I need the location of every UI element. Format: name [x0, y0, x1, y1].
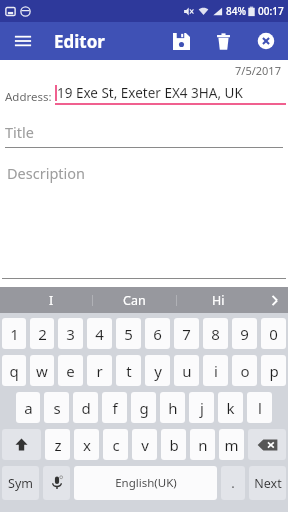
staticText: h — [168, 398, 178, 418]
button[interactable]: j — [189, 392, 214, 423]
staticText: 00:17 — [258, 4, 284, 18]
staticText: 1 — [10, 324, 19, 344]
button[interactable]: w — [30, 355, 54, 386]
staticText: t — [126, 361, 132, 381]
button[interactable]: 8 — [203, 318, 228, 349]
button[interactable]: Voice input — [43, 466, 70, 500]
button[interactable]: t — [116, 355, 141, 386]
button[interactable]: 9 — [232, 318, 257, 349]
staticText: m — [224, 435, 239, 455]
staticText: Title — [5, 122, 34, 142]
button[interactable]: c — [103, 429, 128, 460]
staticText: 7 — [182, 324, 191, 344]
button[interactable]: Backspace — [248, 429, 286, 460]
button[interactable]: z — [45, 429, 70, 460]
button[interactable]: i — [203, 355, 228, 386]
button[interactable]: 5 — [116, 318, 141, 349]
button[interactable]: n — [190, 429, 215, 460]
button[interactable]: s — [44, 392, 69, 423]
button[interactable]: Next — [249, 466, 286, 500]
staticText: c — [112, 435, 120, 455]
staticText: q — [9, 361, 19, 381]
staticText: Hi — [212, 292, 225, 309]
staticText: Editor — [54, 30, 105, 53]
button[interactable]: Delete — [202, 22, 244, 60]
staticText: y — [154, 361, 162, 381]
staticText: s — [53, 398, 61, 418]
button[interactable]: 2 — [30, 318, 54, 349]
button[interactable]: y — [145, 355, 170, 386]
staticText: Sym — [8, 475, 33, 492]
staticText: 19 Exe St, Exeter EX4 3HA, UK — [57, 84, 243, 102]
staticText: Next — [254, 475, 282, 492]
button[interactable]: 7 — [174, 318, 199, 349]
staticText: I — [49, 292, 54, 309]
staticText: e — [66, 361, 75, 381]
staticText: 84% — [226, 4, 246, 18]
button[interactable]: Sym — [2, 466, 39, 500]
staticText: 2 — [38, 324, 47, 344]
button[interactable]: 3 — [58, 318, 83, 349]
button[interactable]: Title — [5, 122, 283, 148]
staticText: 3 — [66, 324, 75, 344]
staticText: z — [54, 435, 62, 455]
button[interactable]: Shift — [2, 429, 41, 460]
button[interactable]: Save — [160, 22, 202, 60]
staticText: b — [169, 435, 179, 455]
staticText: Can — [123, 292, 146, 309]
button[interactable]: q — [2, 355, 26, 386]
button[interactable]: d — [73, 392, 98, 423]
staticText: u — [182, 361, 192, 381]
staticText: a — [24, 398, 33, 418]
staticText: Address: — [5, 89, 52, 105]
button[interactable]: e — [58, 355, 83, 386]
button[interactable]: English(UK) — [74, 466, 217, 500]
staticText: 0 — [269, 324, 278, 344]
button[interactable]: p — [261, 355, 286, 386]
button[interactable]: 1 — [2, 318, 26, 349]
staticText: k — [226, 398, 235, 418]
button[interactable]: a — [16, 392, 40, 423]
staticText: v — [141, 435, 149, 455]
button[interactable]: 6 — [145, 318, 170, 349]
button[interactable]: x — [74, 429, 99, 460]
staticText: 8 — [211, 324, 220, 344]
button[interactable]: Description — [7, 163, 281, 278]
button[interactable]: I — [10, 287, 92, 313]
staticText: 6 — [153, 324, 162, 344]
staticText: l — [258, 398, 262, 418]
staticText: 5 — [124, 324, 133, 344]
button[interactable]: 0 — [261, 318, 286, 349]
button[interactable]: h — [160, 392, 185, 423]
button[interactable]: v — [132, 429, 157, 460]
button[interactable]: Close — [244, 22, 288, 60]
staticText: f — [112, 398, 118, 418]
staticText: g — [139, 398, 149, 418]
button[interactable]: m — [219, 429, 244, 460]
staticText: x — [83, 435, 91, 455]
button[interactable]: r — [87, 355, 112, 386]
button[interactable]: k — [218, 392, 243, 423]
staticText: n — [198, 435, 208, 455]
button[interactable]: l — [247, 392, 272, 423]
button[interactable]: 19 Exe St, Exeter EX4 3HA, UK — [55, 84, 286, 105]
staticText: . — [231, 474, 235, 492]
staticText: w — [36, 361, 48, 381]
button[interactable]: Menu — [0, 22, 46, 60]
button[interactable]: f — [102, 392, 127, 423]
staticText: i — [214, 361, 218, 381]
button[interactable]: o — [232, 355, 257, 386]
staticText: 4 — [95, 324, 104, 344]
button[interactable]: . — [221, 466, 245, 500]
button[interactable]: g — [131, 392, 156, 423]
staticText: j — [200, 398, 204, 418]
button[interactable]: b — [161, 429, 186, 460]
button[interactable]: u — [174, 355, 199, 386]
button[interactable]: 4 — [87, 318, 112, 349]
button[interactable]: Can — [93, 287, 176, 313]
staticText: 7/5/2017 — [235, 63, 281, 78]
staticText: d — [81, 398, 91, 418]
staticText: p — [269, 361, 279, 381]
button[interactable]: More suggestions — [260, 287, 288, 313]
button[interactable]: Hi — [177, 287, 260, 313]
